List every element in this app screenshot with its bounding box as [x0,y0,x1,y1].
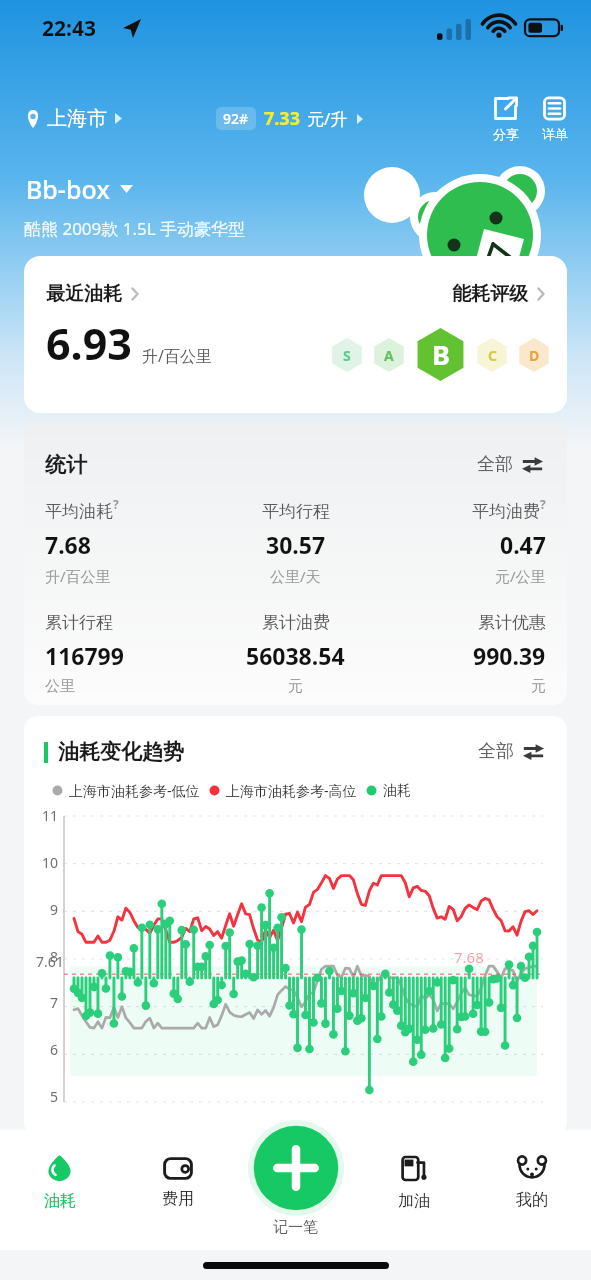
staticText: 116799 [45,640,124,671]
staticText: 7.33 [264,106,300,131]
staticText: 上海市 [47,106,107,131]
staticText: 最近油耗 [46,282,122,306]
staticText: 全部 [478,740,514,763]
staticText: 全部 [477,453,513,476]
staticText: 7.68 [454,947,484,967]
button[interactable]: 我的 [473,1130,591,1236]
staticText: 7 [49,993,58,1012]
button[interactable]: 记一笔 [248,1120,344,1216]
button[interactable]: 最近油耗 [24,256,567,413]
staticText: 6 [49,1040,58,1059]
staticText: 元 [531,677,546,696]
staticText: 公里/天 [270,566,321,586]
staticText: 酷熊 2009款 1.5L 手动豪华型 [24,217,246,240]
staticText: 元/公里 [495,566,546,586]
staticText: Bb-box [26,172,110,206]
staticText: 8 [49,947,58,966]
staticText: D [529,346,540,365]
staticText: ? [113,496,119,512]
staticText: 元 [288,677,303,696]
staticText: 累计优惠 [478,612,546,633]
staticText: 5 [49,1087,58,1106]
staticText: 统计 [45,452,87,478]
staticText: 990.39 [473,640,546,671]
staticText: 22:43 [42,14,96,43]
button[interactable]: 全部 [474,451,546,478]
staticText: B [432,336,450,373]
staticText: 分享 [493,126,519,142]
staticText: 7.61 [36,952,64,971]
staticText: 6.93 [46,314,132,373]
staticText: 平均行程 [262,501,330,522]
staticText: 升/百公里 [142,345,212,367]
staticText: 11 [41,806,58,825]
staticText: 10 [41,853,58,872]
staticText: 加油 [398,1191,430,1211]
staticText: 公里 [45,677,75,696]
staticText: 累计油费 [262,612,330,633]
button[interactable]: 统计 [24,424,567,705]
staticText: 0.47 [500,529,546,560]
button[interactable]: Bb-box [24,171,135,207]
staticText: 上海市油耗参考-低位 [69,781,200,800]
button[interactable]: 费用 [119,1130,237,1236]
staticText: 平均油耗 [45,501,113,522]
staticText: 累计行程 [45,612,113,633]
staticText: 我的 [516,1190,548,1210]
staticText: 记一笔 [273,1218,318,1237]
staticText: 费用 [162,1189,194,1209]
staticText: 30.57 [266,529,326,560]
button[interactable]: 分享 [487,93,524,144]
staticText: 92# [223,109,249,128]
button[interactable]: 加油 [355,1130,473,1236]
staticText: 能耗评级 [452,282,528,306]
staticText: ? [540,496,546,512]
staticText: 56038.54 [246,640,345,671]
button[interactable]: 详单 [536,93,573,144]
button[interactable]: 上海市 [22,102,126,135]
staticText: S [343,346,351,365]
staticText: A [384,346,394,365]
button[interactable]: 92# [213,103,366,134]
staticText: 9 [49,900,58,919]
button[interactable]: 记一笔 [267,1216,324,1239]
staticText: 升/百公里 [45,566,111,586]
staticText: 详单 [542,126,568,142]
button[interactable]: 全部 [475,738,547,765]
staticText: 油耗 [44,1191,76,1211]
staticText: 上海市油耗参考-高位 [226,781,357,800]
staticText: 平均油费 [472,501,540,522]
staticText: 油耗变化趋势 [58,739,184,765]
button[interactable]: 油耗 [0,1130,119,1236]
staticText: 油耗 [383,782,411,800]
staticText: 元/升 [307,107,348,130]
staticText: 7.68 [45,529,91,560]
staticText: C [488,346,497,365]
